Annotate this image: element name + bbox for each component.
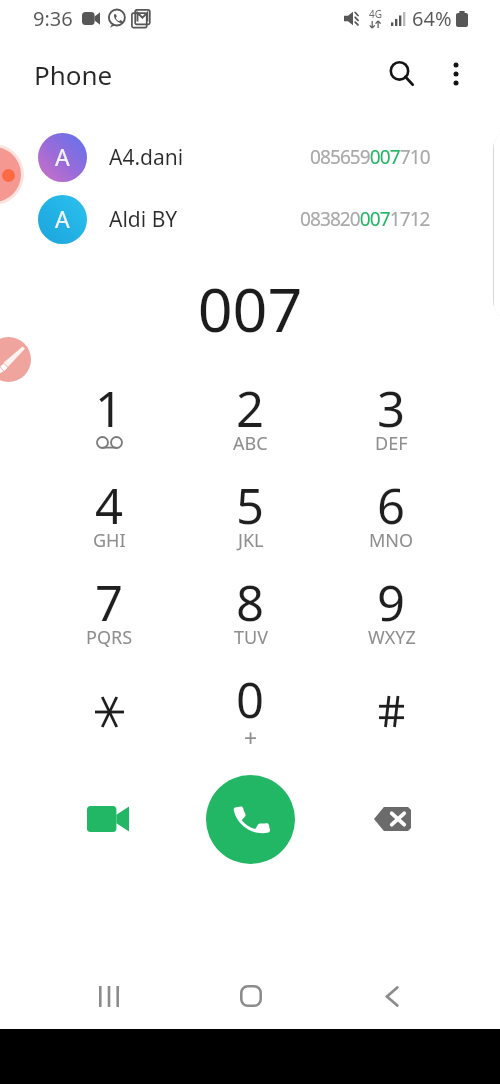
staticText: PQRS [86, 625, 133, 650]
button[interactable]: 4 [38, 476, 180, 573]
button[interactable]: Search [376, 52, 428, 96]
button[interactable]: Recents [38, 965, 180, 1027]
staticText: DEF [375, 431, 408, 456]
staticText: ABC [233, 431, 268, 456]
staticText: 0838200071712 [300, 206, 430, 232]
button[interactable]: Brush tool [0, 337, 31, 382]
button[interactable]: A [0, 188, 500, 250]
button[interactable]: 9 [321, 573, 462, 670]
staticText: 1 [95, 375, 124, 442]
button[interactable]: 2 [180, 379, 321, 476]
staticText: MNO [369, 528, 414, 553]
staticText: A [55, 203, 70, 234]
button[interactable]: Video call [80, 791, 136, 847]
staticText: GHI [93, 528, 126, 553]
button[interactable]: 8 [180, 573, 321, 670]
button[interactable]: Back [321, 965, 462, 1027]
button[interactable]: More options [430, 52, 482, 96]
button[interactable]: Backspace [364, 791, 420, 847]
staticText: + [244, 722, 258, 753]
button[interactable]: 7 [38, 573, 180, 670]
staticText: 6 [377, 472, 406, 539]
staticText: Phone [34, 57, 113, 92]
staticText: 2 [236, 375, 265, 442]
staticText: A4.dani [109, 143, 184, 172]
staticText: 085659007710 [310, 144, 430, 170]
staticText: TUV [234, 625, 268, 650]
button[interactable]: 5 [180, 476, 321, 573]
staticText: 64% [412, 5, 452, 32]
button[interactable]: Call [206, 775, 295, 864]
button[interactable] [321, 670, 462, 767]
staticText: 007 [0, 267, 500, 350]
staticText: 4 [95, 472, 124, 539]
button[interactable]: A [0, 126, 500, 188]
staticText: 3 [377, 375, 406, 442]
button[interactable]: 1 [38, 379, 180, 476]
button[interactable] [38, 670, 180, 767]
staticText: A [55, 141, 70, 172]
staticText: 8 [236, 569, 265, 636]
button[interactable]: 3 [321, 379, 462, 476]
staticText: 4G [369, 7, 382, 21]
button[interactable]: Screen recorder shortcut [0, 147, 21, 202]
staticText: 9 [377, 569, 406, 636]
staticText: 5 [236, 472, 265, 539]
button[interactable]: Home [180, 965, 321, 1027]
staticText: JKL [238, 528, 264, 553]
staticText: 0 [236, 666, 265, 733]
staticText: 7 [95, 569, 124, 636]
staticText: Aldi BY [109, 205, 178, 234]
button[interactable]: 6 [321, 476, 462, 573]
button[interactable]: 0 [180, 670, 321, 767]
staticText: WXYZ [368, 625, 416, 650]
staticText: 9:36 [33, 5, 73, 32]
